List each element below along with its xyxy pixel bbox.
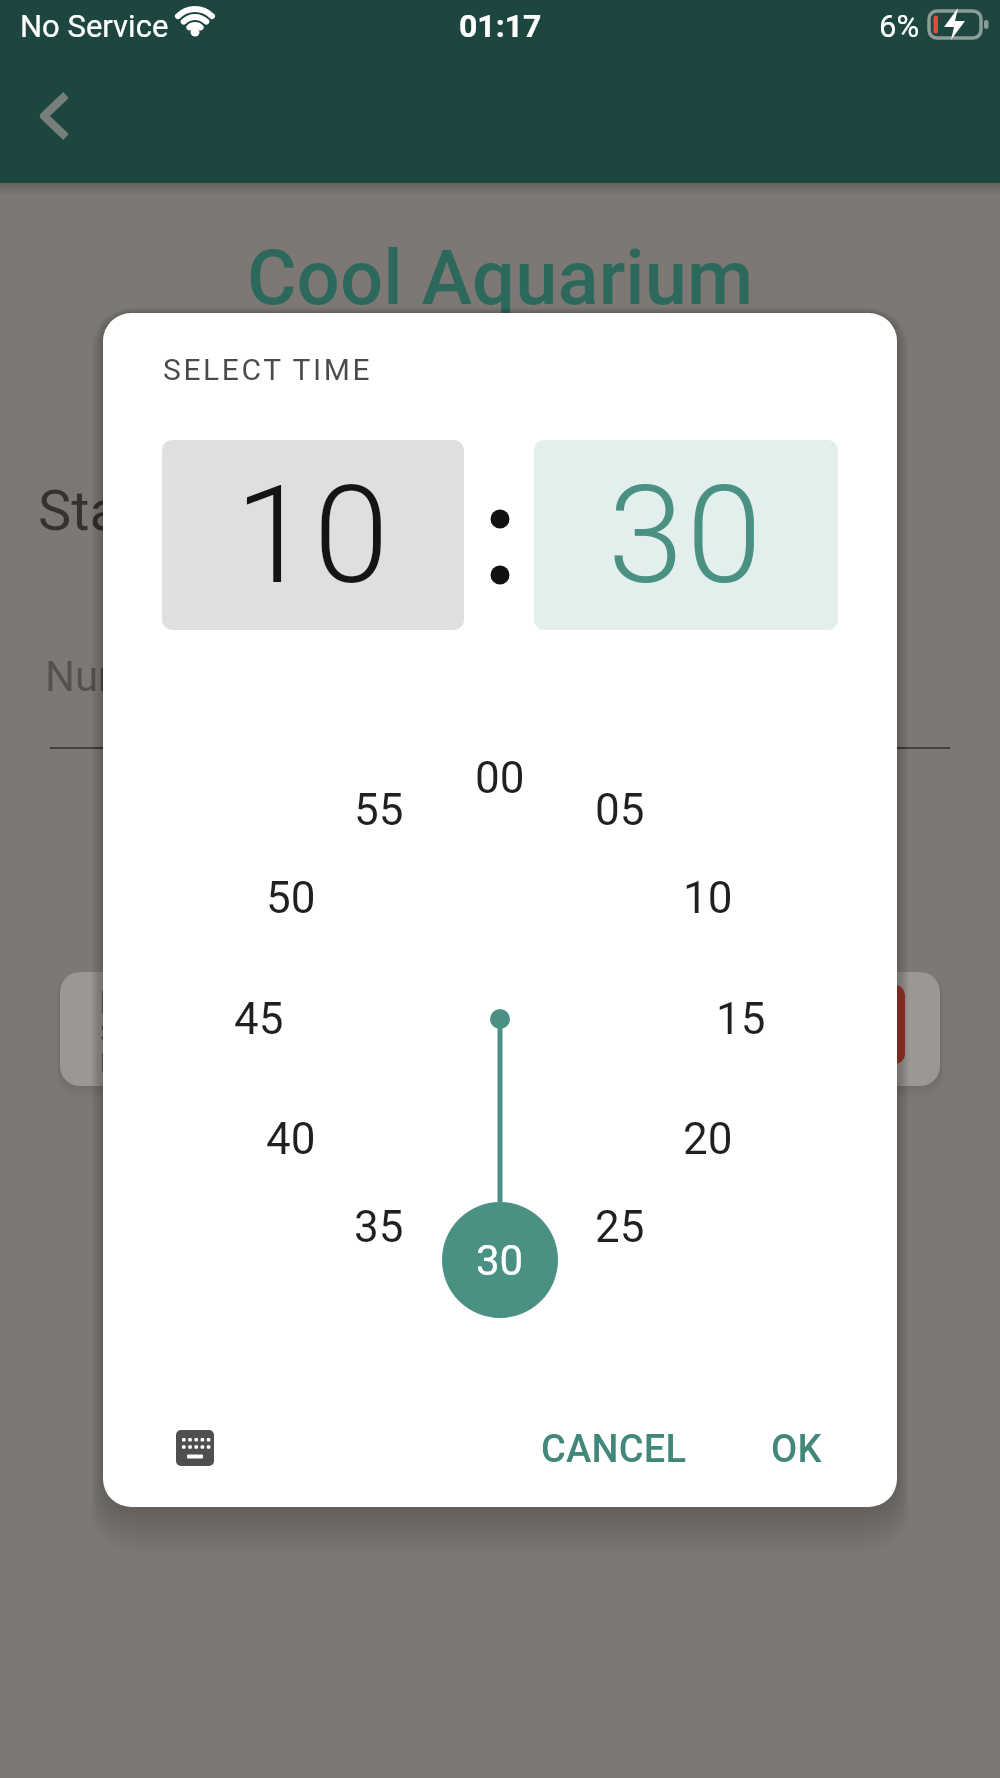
- staticText: No Service: [20, 8, 169, 44]
- staticText: 45: [234, 993, 284, 1045]
- button[interactable]: [790, 985, 905, 1064]
- staticText: 15: [716, 993, 766, 1045]
- button[interactable]: 15: [691, 987, 791, 1051]
- button[interactable]: 20: [658, 1107, 758, 1171]
- button[interactable]: 35: [329, 1195, 429, 1259]
- staticText: 30: [476, 1236, 524, 1285]
- staticText: SELECT TIME: [163, 352, 373, 387]
- staticText: 40: [266, 1113, 316, 1165]
- staticText: Number of feedings: [45, 652, 416, 700]
- button[interactable]: 00: [450, 746, 550, 810]
- staticText: 05: [595, 784, 645, 836]
- staticText: OK: [771, 1427, 822, 1472]
- staticText: 20: [683, 1113, 733, 1165]
- staticText: 35: [354, 1201, 404, 1253]
- button[interactable]: OK: [751, 1419, 841, 1479]
- button[interactable]: 45: [209, 987, 309, 1051]
- button[interactable]: 10: [162, 440, 464, 630]
- button[interactable]: 25: [570, 1195, 670, 1259]
- staticText: 10: [683, 872, 733, 924]
- button[interactable]: 10: [658, 866, 758, 930]
- staticText: 6%: [879, 8, 920, 44]
- staticText: 10: [235, 456, 392, 615]
- staticText: Start: 10:30: [100, 1018, 234, 1048]
- button[interactable]: CANCEL: [539, 1419, 689, 1479]
- button[interactable]: 55: [329, 778, 429, 842]
- button[interactable]: [161, 1418, 229, 1478]
- button[interactable]: 50: [241, 866, 341, 930]
- staticText: Frequency: daily: [100, 1048, 287, 1078]
- staticText: Cool Aquarium: [247, 233, 754, 318]
- staticText: 00: [475, 752, 525, 804]
- staticText: Feeding 1: [100, 983, 240, 1021]
- staticText: 01:17: [459, 7, 542, 45]
- button[interactable]: 40: [241, 1107, 341, 1171]
- staticText: 30: [608, 456, 765, 615]
- button[interactable]: 30: [442, 1202, 558, 1318]
- staticText: Start time: [38, 478, 284, 538]
- staticText: CANCEL: [541, 1427, 687, 1472]
- staticText: 55: [354, 784, 404, 836]
- staticText: 50: [266, 872, 316, 924]
- staticText: 25: [595, 1201, 645, 1253]
- button[interactable]: 05: [570, 778, 670, 842]
- button[interactable]: [28, 88, 84, 144]
- button[interactable]: 30: [534, 440, 838, 630]
